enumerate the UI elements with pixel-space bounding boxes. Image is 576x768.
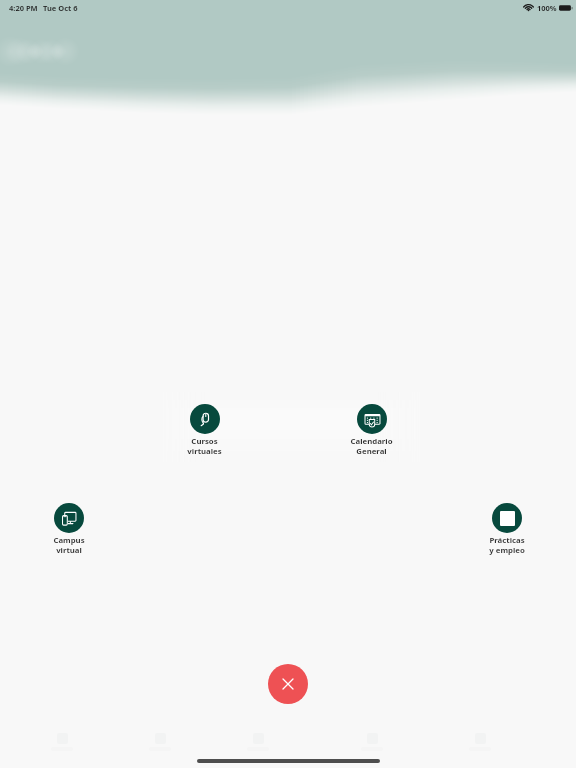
staticText: Calendario: [350, 436, 393, 447]
staticText: General: [356, 446, 387, 457]
button[interactable]: Prácticas y empleo: [462, 503, 552, 565]
button[interactable]: Calendario General: [326, 404, 416, 466]
staticText: 100%: [537, 3, 557, 13]
staticText: y empleo: [489, 545, 525, 556]
button[interactable]: Campus virtual: [24, 503, 114, 565]
staticText: Prácticas: [489, 535, 525, 546]
staticText: 4:20 PM: [9, 3, 38, 13]
button[interactable]: Cursos virtuales: [159, 404, 249, 466]
staticText: virtuales: [187, 446, 222, 457]
button[interactable]: Cerrar menú: [268, 664, 308, 704]
staticText: Cursos: [191, 436, 218, 447]
staticText: Campus: [53, 535, 85, 546]
staticText: virtual: [56, 545, 82, 556]
button[interactable]: Pestaña 2: [120, 733, 200, 763]
button[interactable]: Pestaña 4: [332, 733, 412, 763]
staticText: Tue Oct 6: [43, 3, 78, 13]
button[interactable]: Pestaña 3: [218, 733, 298, 763]
